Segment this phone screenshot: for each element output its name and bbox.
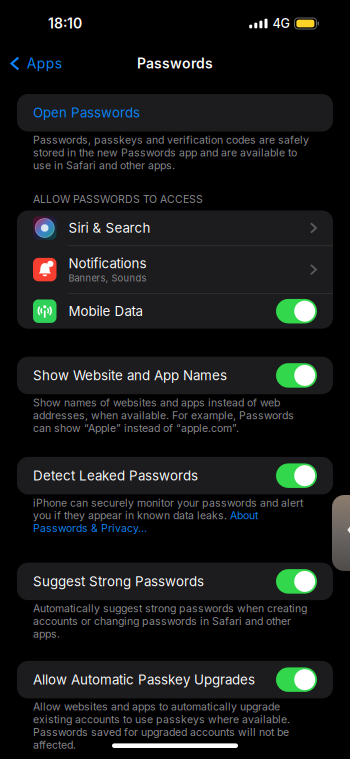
staticText: Passwords, passkeys and verification cod… — [33, 133, 309, 172]
button[interactable]: Detect Leaked Passwords — [17, 457, 333, 494]
staticText: Detect Leaked Passwords — [33, 468, 198, 484]
button[interactable]: Notifications — [17, 246, 333, 293]
staticText: 18:10 — [48, 15, 82, 32]
staticText: Suggest Strong Passwords — [33, 573, 204, 589]
button[interactable]: Open Passwords — [17, 94, 333, 131]
staticText: 4G — [272, 16, 289, 31]
staticText: iPhone can securely monitor your passwor… — [33, 496, 303, 535]
button[interactable]: Back — [332, 495, 350, 571]
staticText: Allow websites and apps to automatically… — [33, 700, 290, 751]
button[interactable]: Suggest Strong Passwords — [17, 563, 333, 600]
staticText: Apps — [27, 55, 62, 72]
staticText: Show Website and App Names — [33, 367, 227, 383]
staticText: Open Passwords — [33, 105, 140, 121]
button[interactable]: Mobile Data — [17, 294, 333, 329]
button[interactable]: Show Website and App Names — [17, 357, 333, 394]
staticText: Show names of websites and apps instead … — [33, 396, 294, 434]
staticText: Passwords — [137, 55, 213, 72]
button[interactable]: Allow Automatic Passkey Upgrades — [17, 661, 333, 698]
staticText: ALLOW PASSWORDS TO ACCESS — [33, 193, 203, 205]
staticText: Mobile Data — [68, 303, 142, 319]
button[interactable]: Apps — [0, 50, 62, 77]
staticText: Allow Automatic Passkey Upgrades — [33, 672, 255, 688]
button[interactable]: Siri & Search — [17, 210, 333, 245]
staticText: Banners, Sounds — [68, 272, 146, 284]
staticText: Automatically suggest strong passwords w… — [33, 602, 307, 640]
staticText: Siri & Search — [68, 220, 150, 236]
staticText: Notifications — [68, 255, 146, 271]
